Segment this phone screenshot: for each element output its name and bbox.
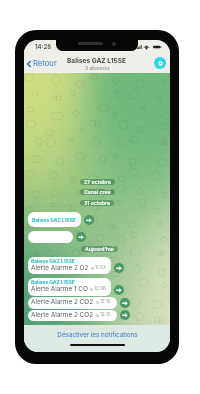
staticText: 11:53 (95, 265, 106, 271)
staticText: Alerte Alarme 1 CO (31, 285, 88, 293)
staticText: Alerte Alarme 2 O2 (31, 264, 89, 272)
staticText: 12:06 (94, 286, 106, 292)
button[interactable]: Alerte Alarme 2 CO2 (28, 297, 117, 309)
staticText: Retour (33, 59, 57, 68)
button[interactable]: Alerte Alarme 2 CO2 (28, 310, 117, 321)
button[interactable]: Canal créé (80, 189, 115, 195)
staticText: 14:28 (35, 43, 52, 50)
button[interactable]: Balises GAZ L15SE (28, 212, 81, 227)
staticText: Balises GAZ L15SE (67, 57, 127, 65)
staticText: Alerte Alarme 2 CO2 (31, 298, 94, 306)
button[interactable]: Balises GAZ L15SE (28, 278, 111, 296)
button[interactable]: 27 octobre (80, 179, 115, 185)
staticText: Alerte Alarme 2 CO2 (31, 311, 94, 319)
staticText: Balises GAZ L15SE (31, 279, 75, 285)
button[interactable]: Profil du canal (154, 57, 166, 69)
button[interactable]: Aujourd'hui (81, 246, 118, 252)
button[interactable]: Transférer (76, 232, 86, 242)
button[interactable]: Transférer (120, 310, 130, 320)
button[interactable]: Transférer (114, 263, 124, 273)
staticText: Balises GAZ L15SE (32, 217, 76, 223)
button[interactable] (28, 231, 73, 243)
staticText: 3 abonnés (85, 65, 110, 71)
staticText: Balises GAZ L15SE (31, 258, 75, 264)
button[interactable]: 31 octobre (80, 200, 114, 206)
staticText: Canal créé (84, 189, 111, 195)
staticText: Désactiver les notifications (57, 331, 138, 339)
staticText: Aujourd'hui (85, 246, 114, 252)
button[interactable]: Transférer (84, 215, 94, 225)
staticText: 12:15 (100, 299, 111, 305)
button[interactable]: Désactiver les notifications (24, 325, 170, 344)
button[interactable]: Balises GAZ L15SE (28, 257, 111, 274)
staticText: 27 octobre (84, 179, 111, 185)
button[interactable]: Transférer (120, 298, 130, 308)
button[interactable]: Retour (24, 56, 61, 71)
staticText: 12:15 (100, 312, 111, 318)
button[interactable]: Transférer (114, 285, 124, 295)
staticText: 31 octobre (84, 200, 110, 206)
